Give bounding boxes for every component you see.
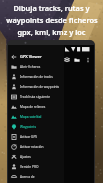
staticText: Información de waypoints [20, 85, 60, 89]
button[interactable]: Waypoints [8, 122, 64, 132]
button[interactable]: Abrir ficheros [8, 62, 64, 72]
staticText: Track/ruta siguiente [20, 95, 50, 99]
staticText: Mapa de relieves [20, 105, 46, 109]
staticText: gpx, kml, kmz y loc [17, 27, 86, 37]
staticText: Waypoints [20, 125, 36, 129]
button[interactable]: Mapa satelital [8, 112, 64, 122]
button[interactable]: Capas del mapa [63, 56, 71, 64]
button[interactable]: Ajustes [8, 152, 64, 162]
button[interactable]: Versión PRO [8, 162, 64, 172]
button[interactable]: Información de tracks [8, 72, 64, 82]
button[interactable]: Acerca de [8, 172, 64, 182]
button[interactable]: Activar GPS [8, 132, 64, 142]
staticText: Mapa satelital [20, 115, 42, 119]
staticText: GPX Viewer [20, 54, 42, 59]
staticText: Versión PRO [20, 165, 39, 169]
button[interactable]: Abrir ficheros [73, 56, 81, 64]
staticText: Información de tracks [20, 75, 53, 79]
button[interactable]: Más opciones [84, 56, 92, 64]
button[interactable]: Atrás [8, 51, 64, 62]
button[interactable]: Mapa de relieves [8, 102, 64, 112]
staticText: Dibuja tracks, rutas y [13, 3, 90, 13]
staticText: waypoints desde ficheros [6, 15, 98, 25]
staticText: Abrir ficheros [20, 65, 41, 69]
staticText: Activar rotación [20, 145, 44, 149]
button[interactable]: Activar rotación [8, 142, 64, 152]
staticText: Acerca de [20, 175, 35, 179]
button[interactable]: Información de waypoints [8, 82, 64, 92]
other: Atrás [11, 54, 17, 60]
staticText: Ajustes [20, 155, 31, 159]
staticText: Activar GPS [20, 135, 38, 139]
button[interactable]: Track/ruta siguiente [8, 92, 64, 102]
